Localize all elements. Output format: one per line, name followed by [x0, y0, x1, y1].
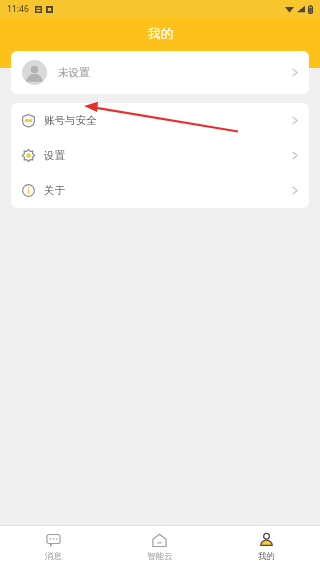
- staticText: 我的: [258, 551, 275, 562]
- staticText: 消息: [45, 551, 62, 562]
- button[interactable]: 设置: [11, 138, 309, 173]
- staticText: 设置: [44, 149, 65, 162]
- staticText: 账号与安全: [44, 114, 97, 127]
- staticText: 智能云: [147, 551, 173, 562]
- button[interactable]: 我的: [213, 526, 320, 568]
- other: 智能云: [152, 533, 167, 548]
- other: 我的: [259, 533, 274, 548]
- staticText: 我的: [148, 26, 173, 42]
- staticText: 11:46: [7, 3, 29, 15]
- other: 消息: [46, 533, 61, 548]
- button[interactable]: 未设置: [11, 51, 309, 94]
- button[interactable]: 智能云: [106, 526, 213, 568]
- staticText: 关于: [44, 184, 65, 197]
- button[interactable]: 消息: [0, 526, 106, 568]
- button[interactable]: 账号与安全: [11, 103, 309, 138]
- button[interactable]: 关于: [11, 173, 309, 208]
- staticText: 未设置: [58, 66, 90, 79]
